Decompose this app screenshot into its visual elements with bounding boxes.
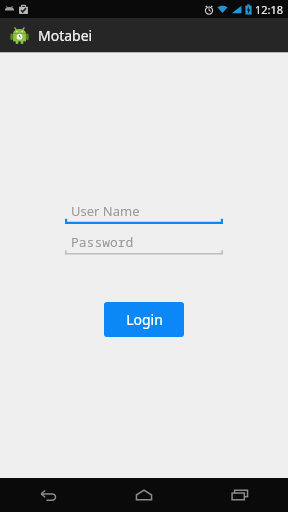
staticText: Login — [126, 310, 163, 329]
staticText: Password — [71, 233, 134, 251]
button[interactable]: User Name — [65, 200, 223, 224]
staticText: 12:18 — [255, 2, 284, 17]
button[interactable]: Login — [104, 302, 184, 337]
button[interactable]: Recent apps — [192, 478, 288, 512]
staticText: Motabei — [38, 26, 93, 45]
button[interactable]: Back — [0, 478, 96, 512]
button[interactable]: Password — [65, 231, 223, 255]
staticText: User Name — [71, 202, 140, 220]
button[interactable]: Home — [96, 478, 192, 512]
